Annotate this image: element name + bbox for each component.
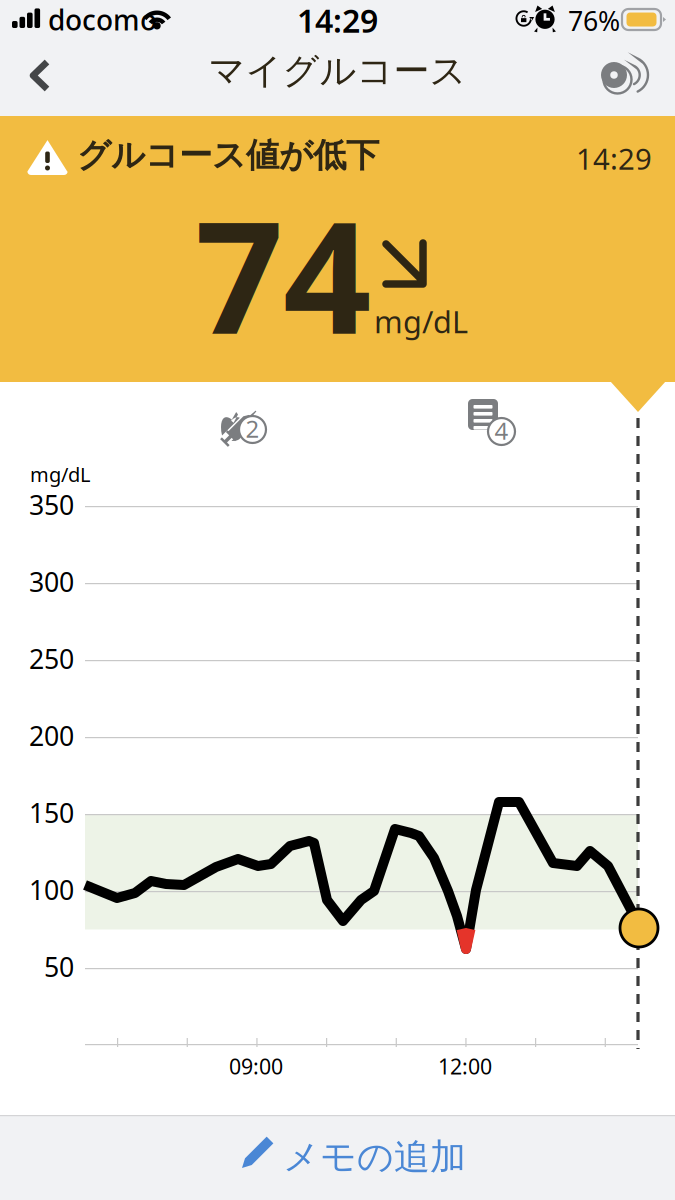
- staticText: マイグルコース: [208, 49, 466, 93]
- staticText: 74: [195, 171, 371, 376]
- button[interactable]: Back: [0, 44, 80, 116]
- staticText: 2: [245, 413, 259, 444]
- staticText: 4: [494, 415, 508, 446]
- button[interactable]: メモの追加: [0, 1115, 675, 1200]
- staticText: メモの追加: [283, 1135, 466, 1179]
- button[interactable]: Scan sensor: [587, 44, 675, 116]
- staticText: 200: [29, 718, 74, 753]
- staticText: 12:00: [438, 1052, 492, 1080]
- staticText: 14:29: [297, 0, 378, 41]
- staticText: mg/dL: [374, 301, 468, 342]
- staticText: 250: [29, 641, 74, 676]
- staticText: 350: [29, 487, 74, 522]
- staticText: 76%: [568, 3, 620, 38]
- staticText: mg/dL: [30, 461, 90, 488]
- staticText: docomo: [48, 1, 157, 38]
- staticText: 300: [29, 564, 74, 599]
- staticText: 100: [29, 872, 74, 907]
- staticText: 14:29: [576, 139, 652, 178]
- staticText: 09:00: [229, 1052, 283, 1080]
- staticText: グルコース値が低下: [77, 135, 379, 176]
- staticText: 150: [29, 795, 74, 830]
- staticText: 50: [44, 949, 74, 984]
